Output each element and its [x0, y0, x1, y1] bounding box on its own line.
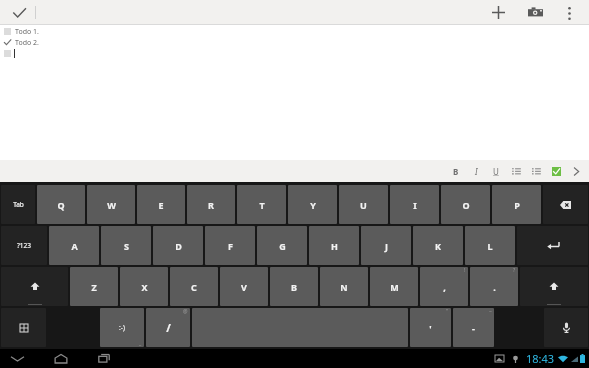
button[interactable]: Camera: [522, 0, 548, 25]
button[interactable]: .: [470, 267, 518, 306]
button[interactable]: Home: [50, 349, 72, 368]
button[interactable]: Bulleted list: [526, 160, 546, 182]
button[interactable]: P: [492, 185, 541, 224]
button[interactable]: ,: [420, 267, 468, 306]
staticText: ,: [443, 281, 446, 293]
button[interactable]: X: [120, 267, 168, 306]
staticText: T: [259, 199, 265, 211]
button[interactable]: V: [220, 267, 268, 306]
button[interactable]: O: [441, 185, 490, 224]
button[interactable]: Recent apps: [92, 349, 114, 368]
button[interactable]: Numbered list: [506, 160, 526, 182]
button[interactable]: Add: [485, 0, 511, 25]
button[interactable]: R: [187, 185, 235, 224]
staticText: R: [208, 199, 214, 211]
staticText: A: [71, 240, 78, 252]
button[interactable]: ?123: [1, 226, 47, 265]
button[interactable]: Backspace: [543, 185, 588, 224]
staticText: M: [390, 281, 399, 293]
staticText: K: [435, 240, 441, 252]
staticText: U: [493, 166, 499, 177]
button[interactable]: M: [370, 267, 418, 306]
button[interactable]: F: [205, 226, 255, 265]
button[interactable]: W: [87, 185, 135, 224]
button[interactable]: Q: [37, 185, 85, 224]
staticText: N: [340, 281, 348, 293]
staticText: U: [360, 199, 367, 211]
button[interactable]: ': [410, 308, 451, 347]
button[interactable]: Checklist: [546, 160, 566, 182]
button[interactable]: H: [309, 226, 359, 265]
staticText: P: [514, 199, 520, 211]
staticText: B: [291, 281, 297, 293]
button[interactable]: K: [413, 226, 463, 265]
staticText: ~: [489, 308, 492, 315]
staticText: S: [124, 240, 129, 252]
staticText: .: [493, 281, 496, 293]
staticText: Todo 1.: [15, 27, 39, 37]
button[interactable]: Shift: [1, 267, 68, 306]
button[interactable]: D: [153, 226, 203, 265]
button[interactable]: E: [137, 185, 185, 224]
staticText: B: [453, 166, 459, 177]
button[interactable]: Voice input: [544, 308, 588, 347]
button[interactable]: T: [237, 185, 286, 224]
button[interactable]: Todo 1.: [0, 26, 589, 37]
button[interactable]: Todo 2.: [0, 37, 589, 48]
button[interactable]: Italic: [466, 160, 486, 182]
staticText: /: [166, 320, 171, 335]
staticText: -: [472, 322, 475, 334]
button[interactable]: S: [101, 226, 151, 265]
button[interactable]: Shift: [520, 267, 588, 306]
staticText: ": [446, 308, 449, 315]
button[interactable]: Done: [8, 2, 30, 24]
button[interactable]: Back: [6, 349, 28, 368]
staticText: _: [139, 340, 142, 347]
button[interactable]: More options: [557, 1, 581, 25]
staticText: @: [183, 308, 188, 315]
staticText: J: [385, 240, 388, 252]
button[interactable]: More formatting: [566, 160, 586, 182]
button[interactable]: C: [170, 267, 218, 306]
button[interactable]: Underline: [486, 160, 506, 182]
staticText: ?123: [17, 241, 31, 250]
staticText: H: [331, 240, 338, 252]
staticText: E: [158, 199, 164, 211]
button[interactable]: Enter: [517, 226, 588, 265]
staticText: I: [475, 166, 478, 177]
button[interactable]: Y: [288, 185, 337, 224]
button[interactable]: A: [49, 226, 99, 265]
staticText: Z: [91, 281, 97, 293]
staticText: Tab: [13, 200, 24, 209]
button[interactable]: :-): [100, 308, 144, 347]
button[interactable]: G: [257, 226, 307, 265]
staticText: Q: [57, 199, 65, 211]
staticText: Y: [310, 199, 316, 211]
button[interactable]: -: [453, 308, 494, 347]
staticText: 18:43: [526, 351, 555, 366]
staticText: F: [228, 240, 233, 252]
staticText: !: [464, 267, 466, 274]
staticText: D: [175, 240, 182, 252]
button[interactable]: L: [465, 226, 515, 265]
button[interactable]: B: [270, 267, 318, 306]
button[interactable]: Z: [70, 267, 118, 306]
staticText: ': [429, 322, 432, 334]
button[interactable]: I: [390, 185, 439, 224]
staticText: G: [279, 240, 286, 252]
button[interactable]: J: [361, 226, 411, 265]
staticText: V: [241, 281, 247, 293]
staticText: W: [107, 199, 116, 211]
staticText: ?: [513, 267, 516, 274]
button[interactable]: /: [146, 308, 190, 347]
staticText: C: [191, 281, 197, 293]
staticText: I: [413, 199, 417, 211]
button[interactable]: Bold: [446, 160, 466, 182]
button[interactable]: Keyboard settings: [1, 308, 46, 347]
staticText: Todo 2.: [15, 38, 39, 48]
button[interactable]: [0, 48, 589, 59]
button[interactable]: U: [339, 185, 388, 224]
button[interactable]: Tab: [1, 185, 35, 224]
button[interactable]: N: [320, 267, 368, 306]
